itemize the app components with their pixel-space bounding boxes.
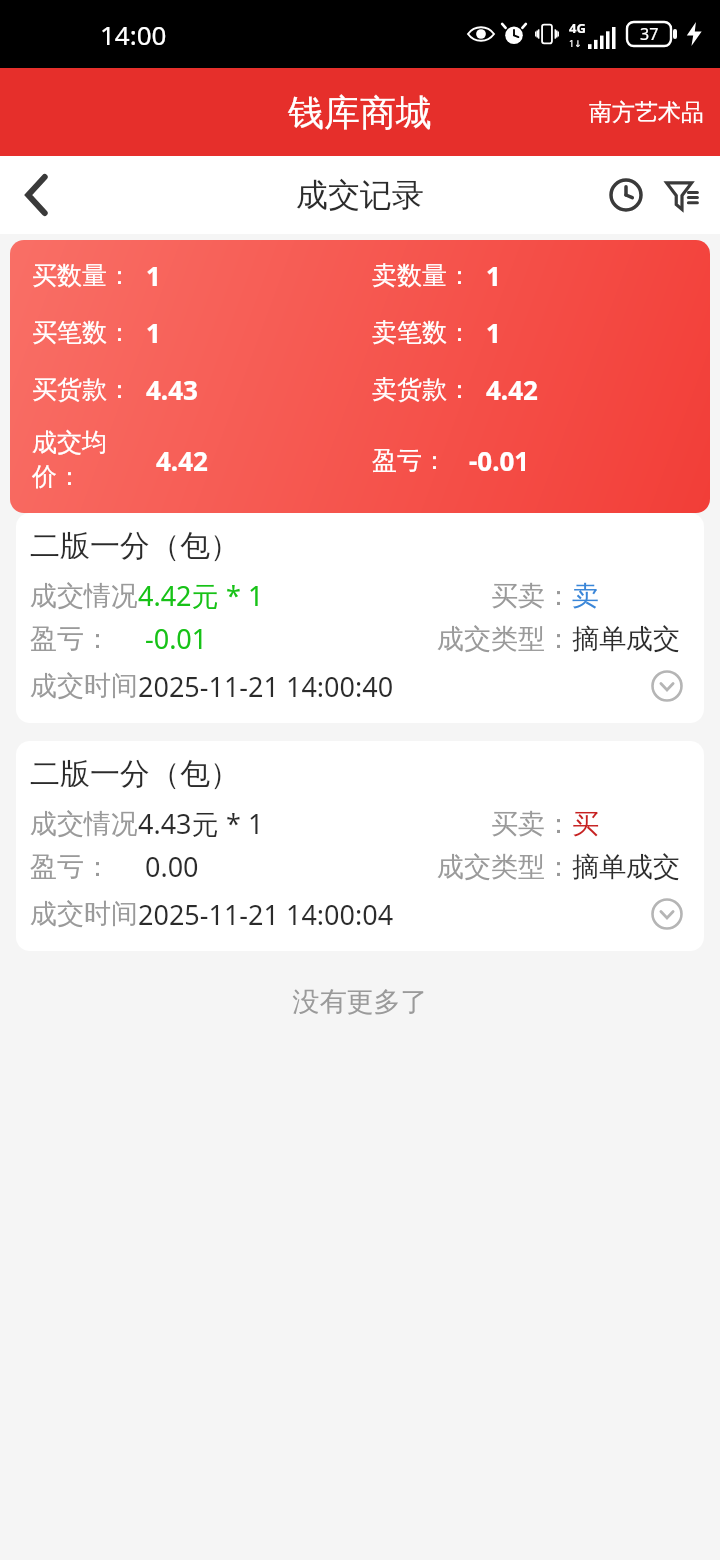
staticText: 4.43: [146, 372, 198, 407]
staticText: 14:00: [100, 17, 167, 52]
button[interactable]: 二版一分（包）: [16, 741, 704, 951]
button[interactable]: Expand details: [644, 891, 690, 937]
staticText: 盈亏：: [372, 445, 447, 476]
staticText: 4.42元: [138, 577, 219, 614]
staticText: -0.01: [469, 443, 530, 478]
staticText: 成交均价：: [32, 427, 142, 493]
staticText: 南方艺术品: [589, 98, 704, 127]
staticText: 卖笔数：: [372, 317, 472, 348]
staticText: 4.42: [486, 372, 538, 407]
staticText: 4.42: [156, 443, 208, 478]
staticText: 成交记录: [296, 175, 424, 215]
staticText: 成交时间: [30, 669, 138, 703]
staticText: 二版一分（包）: [30, 755, 240, 793]
button[interactable]: Filter: [654, 167, 710, 223]
staticText: 摘单成交: [572, 622, 680, 656]
staticText: 卖: [572, 579, 599, 613]
staticText: 买: [572, 807, 599, 841]
staticText: 4.43元: [138, 805, 219, 842]
staticText: -0.01: [145, 620, 208, 657]
staticText: 1: [486, 315, 501, 350]
staticText: 1: [486, 258, 501, 293]
staticText: * 1: [219, 577, 264, 614]
staticText: 卖货款：: [372, 374, 472, 405]
staticText: 盈亏：: [30, 622, 111, 656]
staticText: 37: [640, 23, 659, 45]
staticText: 成交类型：: [437, 850, 572, 884]
staticText: 卖数量：: [372, 260, 472, 291]
staticText: 1↓: [569, 37, 582, 49]
staticText: 成交类型：: [437, 622, 572, 656]
button[interactable]: Expand details: [644, 663, 690, 709]
staticText: 二版一分（包）: [30, 527, 240, 565]
staticText: 1: [146, 258, 161, 293]
button[interactable]: 买数量：: [10, 240, 710, 513]
staticText: 2025-11-21 14:00:40: [138, 668, 394, 705]
staticText: 没有更多了: [0, 985, 720, 1019]
staticText: 成交时间: [30, 897, 138, 931]
staticText: 买笔数：: [32, 317, 132, 348]
staticText: 0.00: [145, 848, 199, 885]
staticText: 成交情况: [30, 807, 138, 841]
staticText: 买数量：: [32, 260, 132, 291]
button[interactable]: 二版一分（包）: [16, 513, 704, 723]
staticText: * 1: [219, 805, 264, 842]
staticText: 摘单成交: [572, 850, 680, 884]
staticText: 1: [146, 315, 161, 350]
staticText: 买卖：: [491, 807, 572, 841]
staticText: 2025-11-21 14:00:04: [138, 896, 394, 933]
staticText: 买卖：: [491, 579, 572, 613]
staticText: 盈亏：: [30, 850, 111, 884]
staticText: 钱库商城: [288, 90, 432, 135]
staticText: 4G: [569, 19, 586, 37]
button[interactable]: Back: [0, 158, 74, 232]
staticText: 买货款：: [32, 374, 132, 405]
button[interactable]: History: [598, 167, 654, 223]
staticText: 成交情况: [30, 579, 138, 613]
